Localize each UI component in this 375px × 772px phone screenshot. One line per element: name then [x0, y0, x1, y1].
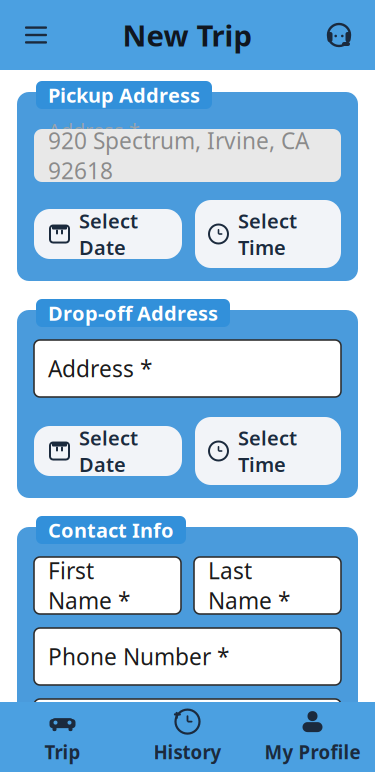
- staticText: Select Date: [79, 207, 138, 260]
- staticText: Last Name *: [208, 555, 290, 616]
- staticText: My Profile: [264, 740, 360, 764]
- staticText: Email *: [48, 712, 125, 742]
- button[interactable]: Select Time: [195, 417, 341, 485]
- staticText: Trip: [44, 740, 80, 764]
- staticText: Address *: [48, 117, 140, 144]
- button[interactable]: Select Date: [34, 426, 182, 476]
- button[interactable]: Phone Number *: [34, 628, 341, 685]
- button[interactable]: Select Time: [195, 200, 341, 268]
- button[interactable]: Select Date: [34, 209, 182, 259]
- staticText: New Trip: [122, 15, 252, 54]
- staticText: Phone Number *: [48, 641, 229, 671]
- staticText: Drop-off Address: [48, 300, 218, 326]
- staticText: Select Time: [238, 424, 297, 477]
- staticText: First Name *: [48, 555, 130, 616]
- staticText: Pickup Address: [48, 82, 200, 108]
- staticText: 920 Spectrum, Irvine, CA 92618: [48, 125, 309, 186]
- button[interactable]: My Profile: [250, 702, 375, 772]
- button[interactable]: Email *: [34, 699, 341, 756]
- button[interactable]: History: [125, 702, 250, 772]
- staticText: Address *: [48, 353, 152, 383]
- staticText: Select Date: [79, 424, 138, 477]
- button[interactable]: Last Name *: [194, 557, 341, 614]
- button[interactable]: Trip: [0, 702, 125, 772]
- staticText: History: [153, 740, 221, 764]
- button[interactable]: Menu: [14, 13, 58, 57]
- button[interactable]: Support: [317, 13, 361, 57]
- staticText: Select Time: [238, 207, 297, 260]
- button[interactable]: Address *: [34, 340, 341, 397]
- button[interactable]: First Name *: [34, 557, 181, 614]
- staticText: Contact Info: [48, 517, 174, 543]
